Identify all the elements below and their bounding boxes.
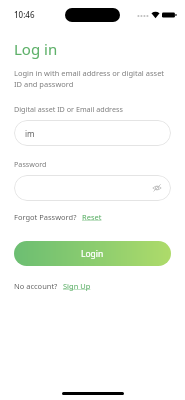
staticText: Login <box>81 248 104 260</box>
staticText: Forgot Password? <box>14 212 77 222</box>
button[interactable]: Login <box>14 241 171 266</box>
staticText: Log in <box>14 39 58 59</box>
staticText: 10:46 <box>14 9 35 20</box>
staticText: No account? <box>14 281 58 291</box>
staticText: Login in with email address or digital a… <box>14 68 171 89</box>
staticText: Digital asset ID or Email address <box>14 104 123 114</box>
button[interactable]: Show password <box>151 182 163 194</box>
staticText: im <box>25 128 35 139</box>
staticText: Reset <box>82 212 102 222</box>
button[interactable]: Reset <box>82 212 102 222</box>
button[interactable]: im <box>14 120 171 146</box>
staticText: Password <box>14 159 47 169</box>
staticText: Sign Up <box>63 281 91 291</box>
button[interactable]: Sign Up <box>63 281 91 291</box>
button[interactable]: Show password <box>14 175 171 201</box>
